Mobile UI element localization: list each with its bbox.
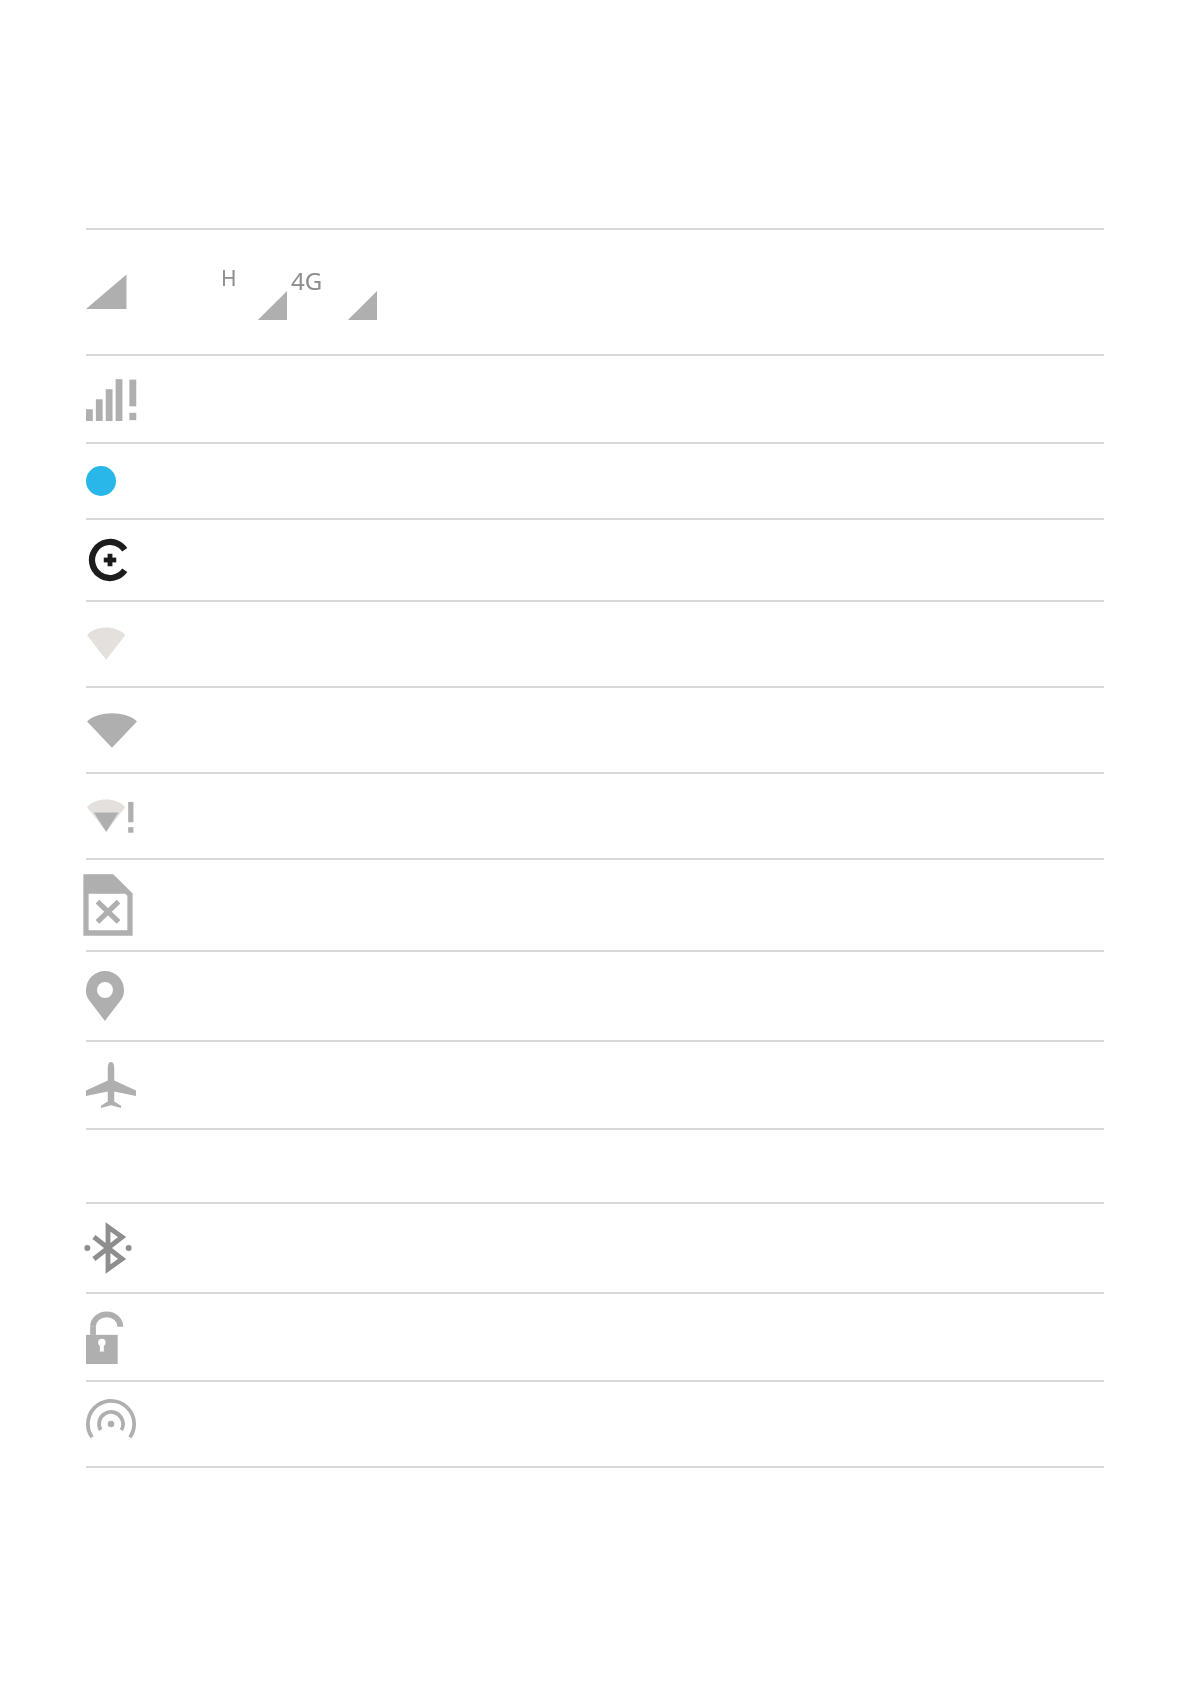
button[interactable]: Data saver bbox=[0, 520, 1191, 600]
button[interactable]: Bluetooth bbox=[0, 1204, 1191, 1292]
staticText: 4G bbox=[291, 264, 323, 297]
button[interactable]: Hotspot bbox=[0, 1382, 1191, 1466]
staticText: H bbox=[221, 264, 237, 293]
button[interactable]: Wi-Fi no internet bbox=[0, 774, 1191, 858]
button[interactable]: No SIM card bbox=[0, 860, 1191, 950]
button[interactable]: Screen unlocked bbox=[0, 1294, 1191, 1380]
button[interactable]: Airplane mode bbox=[0, 1042, 1191, 1128]
button[interactable]: Roaming bbox=[0, 444, 1191, 518]
button[interactable]: Mobile signal with warning bbox=[0, 356, 1191, 442]
button[interactable]: Mobile signal icons bbox=[0, 230, 1191, 354]
button[interactable]: Location bbox=[0, 952, 1191, 1040]
button[interactable]: Wi-Fi connected bbox=[0, 688, 1191, 772]
